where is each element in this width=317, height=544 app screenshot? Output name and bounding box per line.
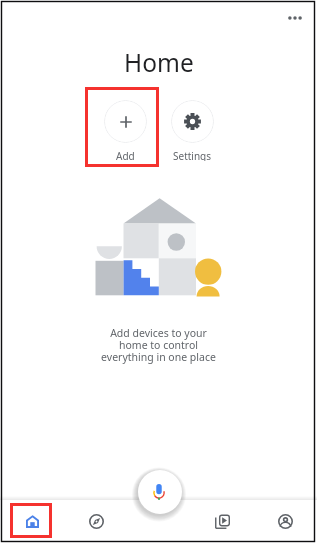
button[interactable]: Media [191, 500, 254, 542]
button[interactable]: Explore [64, 500, 128, 542]
staticText: Add [116, 149, 135, 161]
button[interactable]: More options [283, 6, 307, 30]
button[interactable]: Account [254, 500, 317, 542]
button[interactable]: Add [93, 97, 157, 161]
staticText: Settings [173, 149, 212, 161]
button[interactable]: Google Assistant [138, 470, 182, 514]
button[interactable]: Settings [160, 97, 224, 161]
staticText: Home [124, 46, 194, 79]
staticText: Add devices to your home to control ever… [101, 326, 216, 364]
button[interactable]: Home [0, 500, 64, 542]
